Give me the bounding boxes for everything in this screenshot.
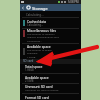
staticText: Unmount SD card to remove <box>25 88 59 91</box>
staticText: 1.56GB <box>27 55 36 58</box>
staticText: Calculating... <box>26 13 44 17</box>
staticText: The amount of space <box>27 48 52 51</box>
staticText: Miscellaneous files <box>27 28 57 32</box>
staticText: 5:08 PM <box>68 0 79 4</box>
staticText: Available space <box>25 75 49 79</box>
staticText: Format SD card <box>25 95 49 99</box>
staticText: used by miscellaneous files <box>27 35 59 38</box>
staticText: 1.86GB <box>25 68 34 72</box>
staticText: Total space <box>25 64 43 68</box>
staticText: SD card <box>23 59 34 63</box>
staticText: The amount of memory <box>27 32 55 35</box>
button[interactable]: Navigate up <box>20 4 81 11</box>
staticText: Calculating... <box>27 39 43 42</box>
staticText: Storage <box>32 5 48 11</box>
staticText: Available space <box>27 44 51 48</box>
staticText: Unmount SD card <box>25 84 53 88</box>
staticText: Erases all data <box>25 98 42 100</box>
staticText: Cached data <box>27 19 47 23</box>
other: Navigate up <box>21 6 25 10</box>
staticText: Calculating... <box>27 23 44 27</box>
staticText: 213MB <box>25 79 34 83</box>
staticText: available <box>27 51 38 54</box>
